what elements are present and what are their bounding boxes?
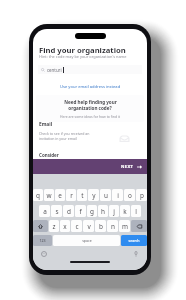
button[interactable]: q [33,189,43,201]
staticText: s [55,207,59,216]
button[interactable]: Use your email address instead [33,83,147,90]
button[interactable]: NEXT [33,159,147,174]
button[interactable]: Emoji keyboard [33,249,55,258]
staticText: n [111,222,115,231]
staticText: y [92,191,96,200]
button[interactable]: i [112,189,123,201]
staticText: h [101,207,105,216]
button[interactable]: e [55,189,65,201]
staticText: q [36,191,40,200]
staticText: Need help finding your [64,99,117,105]
button[interactable]: t [77,189,87,201]
staticText: Use your email address instead [60,84,121,90]
staticText: t [81,191,84,200]
button[interactable]: o [124,189,135,201]
staticText: organization code? [68,105,112,111]
button[interactable]: v [83,220,94,232]
button[interactable]: r [66,189,76,201]
button[interactable]: centuri [38,65,142,74]
staticText: o [128,191,132,200]
staticText: centuri [47,67,62,73]
staticText: e [58,191,62,200]
button[interactable]: c [71,220,82,232]
button[interactable] [131,220,147,232]
staticText: Here are some ideas for how to find it [60,114,120,119]
button[interactable]: y [88,189,99,201]
button[interactable]: s [51,205,62,217]
staticText: NEXT [121,164,134,170]
staticText: c [75,222,79,231]
staticText: b [99,222,103,231]
button[interactable]: b [95,220,106,232]
staticText: u [104,191,108,200]
staticText: r [70,191,73,200]
button[interactable]: l [131,205,141,217]
staticText: g [90,207,94,216]
button[interactable]: f [75,205,86,217]
staticText: space [82,238,92,243]
staticText: x [63,222,67,231]
button[interactable]: m [119,220,130,232]
staticText: Hint: the code may be your organization'… [39,54,127,59]
button[interactable]: g [87,205,97,217]
button[interactable]: Need help finding your [36,95,144,122]
button[interactable]: 123 [33,235,52,246]
button[interactable]: a [39,205,50,217]
staticText: z [52,222,56,231]
staticText: Email [39,121,53,128]
staticText: v [87,222,91,231]
staticText: Find your organization [39,45,126,55]
staticText: i [117,191,119,200]
button[interactable]: Email [33,121,147,143]
button[interactable]: z [49,220,59,232]
button[interactable] [33,220,48,232]
staticText: k [123,207,127,216]
staticText: search [128,238,140,243]
staticText: w [46,191,52,200]
staticText: j [113,207,115,216]
button[interactable]: x [60,220,70,232]
button[interactable]: search [121,235,147,246]
staticText: m [122,222,128,231]
staticText: l [135,207,137,216]
button[interactable]: Voice input [125,249,147,258]
button[interactable]: u [100,189,111,201]
staticText: Check to see if you received an [39,131,90,136]
staticText: p [140,191,144,200]
button[interactable]: j [109,205,119,217]
button[interactable]: n [107,220,118,232]
button[interactable]: h [98,205,108,217]
button[interactable]: w [44,189,54,201]
staticText: Consider [39,152,59,158]
staticText: 123 [39,238,46,243]
button[interactable]: k [120,205,130,217]
staticText: f [79,207,82,216]
button[interactable]: space [53,235,120,246]
staticText: invitation in your email [39,136,77,141]
staticText: a [43,207,47,216]
staticText: d [67,207,71,216]
button[interactable]: p [136,189,147,201]
button[interactable]: d [63,205,74,217]
